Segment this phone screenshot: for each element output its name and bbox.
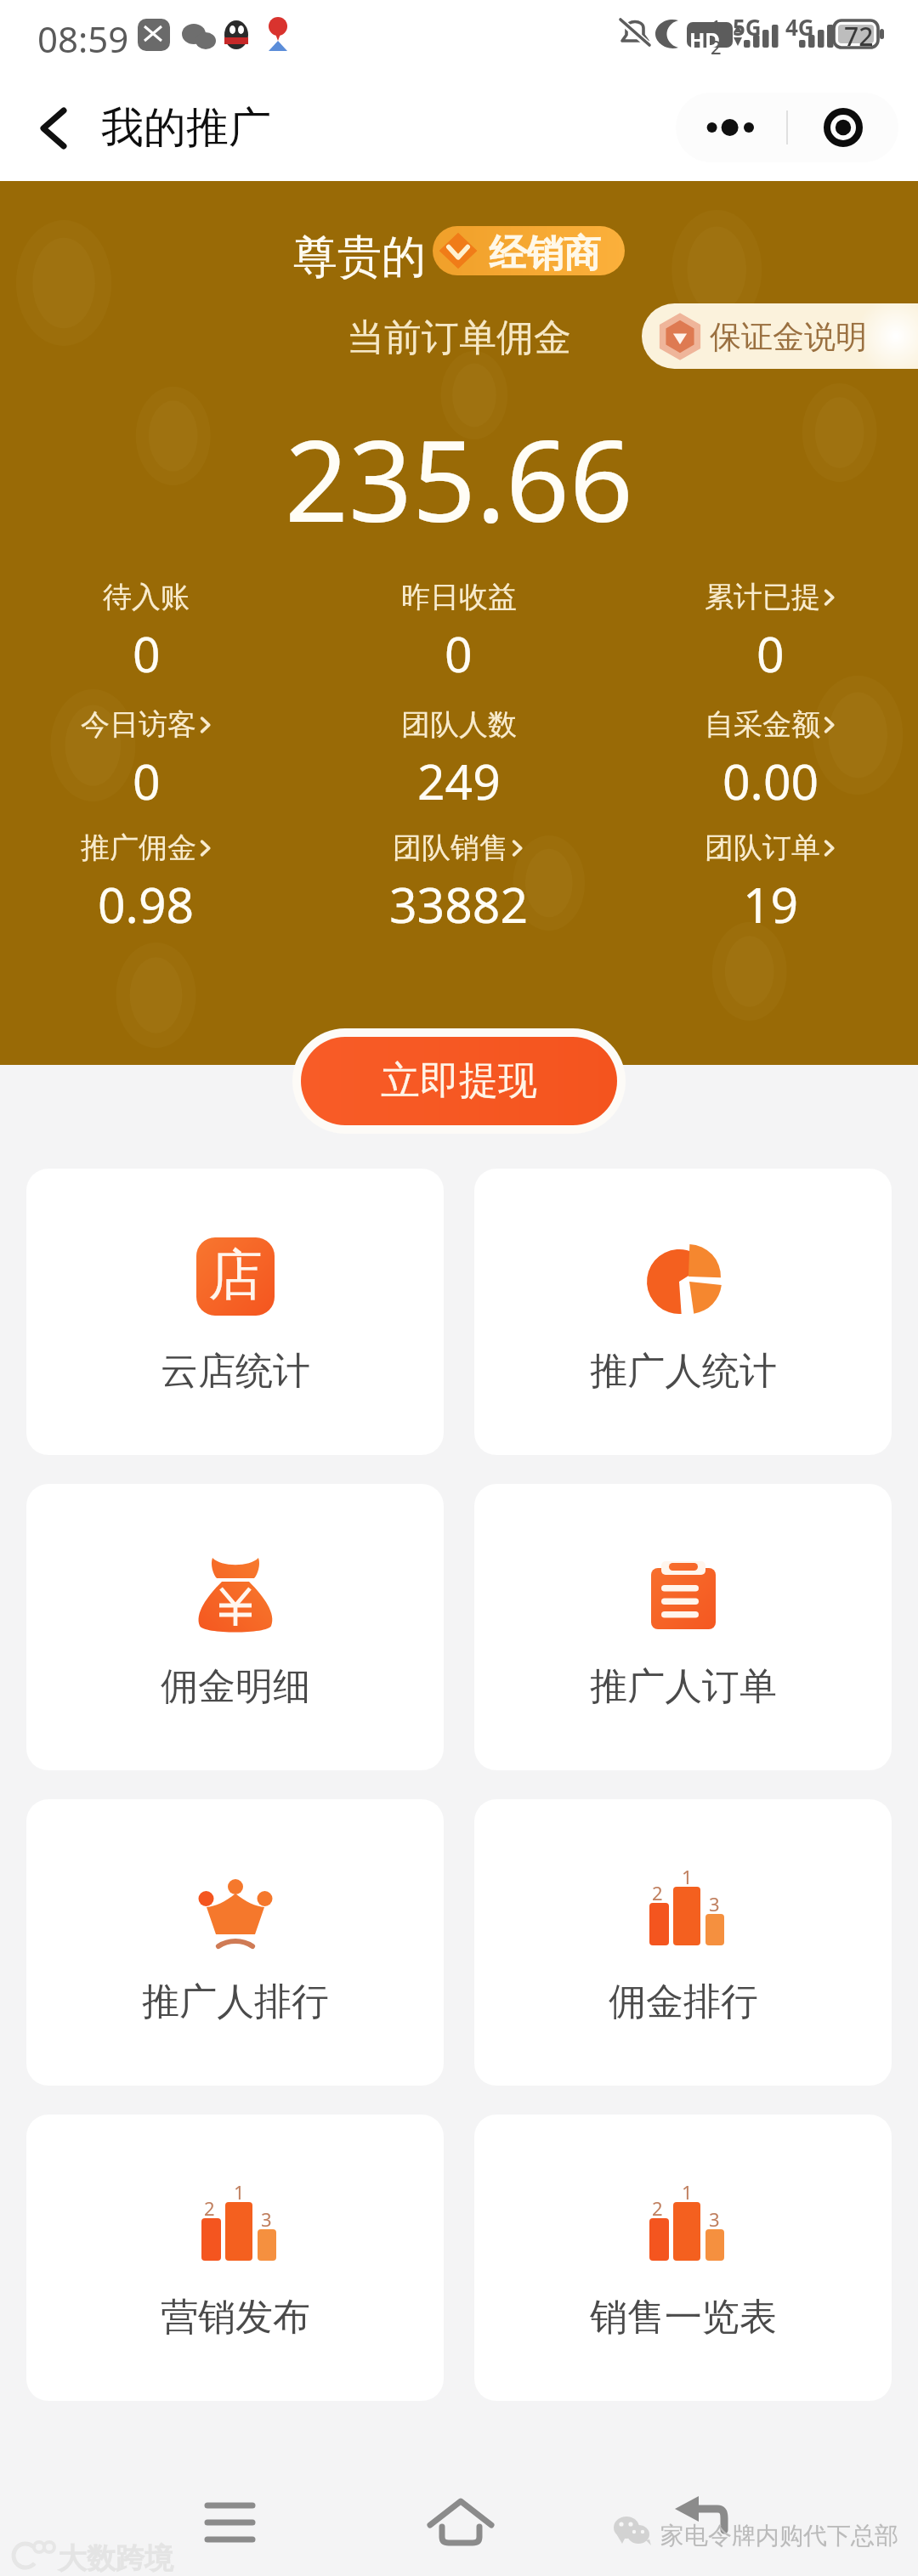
staticText: 销售一览表 <box>590 2294 777 2341</box>
button[interactable]: 推广人排行 <box>26 1799 444 2086</box>
staticText: 72 <box>844 19 874 54</box>
button[interactable]: Recent apps <box>194 2491 265 2562</box>
button[interactable]: 推广佣金 <box>0 829 303 937</box>
staticText: 5G <box>733 12 762 42</box>
button[interactable]: 2 <box>474 1799 892 2086</box>
staticText: 佣金明细 <box>161 1663 310 1710</box>
button[interactable]: Close mini program <box>788 93 898 162</box>
staticText: 0 <box>133 620 161 687</box>
button[interactable]: 2 <box>474 2115 892 2401</box>
staticText: 累计已提 <box>705 579 820 615</box>
staticText: 0 <box>445 620 473 687</box>
staticText: 尊贵的 <box>293 229 426 286</box>
staticText: 2 <box>652 1880 663 1905</box>
staticText: 推广人排行 <box>142 1979 329 2025</box>
staticText: 3 <box>709 1891 720 1916</box>
button[interactable]: 店 <box>26 1169 444 1455</box>
button[interactable]: 保证金说明 <box>642 303 918 369</box>
staticText: 2 <box>711 34 722 59</box>
button[interactable]: 推广人订单 <box>474 1484 892 1770</box>
staticText: 立即提现 <box>381 1056 537 1106</box>
button[interactable]: 团队订单 <box>615 829 918 937</box>
button[interactable]: Back <box>16 91 91 166</box>
button[interactable]: 昨日收益 <box>303 579 615 687</box>
staticText: 4G <box>785 12 814 42</box>
staticText: 0 <box>133 748 161 814</box>
button[interactable]: 推广人统计 <box>474 1169 892 1455</box>
button[interactable]: Home <box>423 2489 498 2564</box>
staticText: 团队人数 <box>401 706 517 743</box>
staticText: 佣金排行 <box>609 1979 758 2025</box>
staticText: 19 <box>743 871 799 937</box>
staticText: 1 <box>711 14 722 39</box>
staticText: HD <box>689 25 720 54</box>
staticText: 大数跨境 <box>58 2540 173 2576</box>
staticText: 推广人统计 <box>590 1348 777 1395</box>
staticText: 2 <box>204 2195 215 2221</box>
staticText: 家电令牌内购代下总部 <box>660 2521 898 2551</box>
staticText: 235.66 <box>0 403 918 554</box>
staticText: 经销商 <box>489 230 601 275</box>
staticText: 保证金说明 <box>710 317 867 357</box>
staticText: 团队销售 <box>393 829 508 866</box>
button[interactable]: 立即提现 <box>301 1037 617 1125</box>
staticText: 249 <box>417 748 501 814</box>
staticText: 云店统计 <box>161 1348 310 1395</box>
button[interactable]: Back <box>668 2493 738 2562</box>
staticText: 店 <box>208 1241 263 1310</box>
button[interactable]: 团队人数 <box>303 706 615 814</box>
staticText: 营销发布 <box>161 2294 310 2341</box>
staticText: 33882 <box>389 871 529 937</box>
staticText: 团队订单 <box>705 829 820 866</box>
staticText: 3 <box>261 2206 272 2232</box>
staticText: 自采金额 <box>705 706 820 743</box>
staticText: 昨日收益 <box>401 579 517 615</box>
button[interactable]: 团队销售 <box>303 829 615 937</box>
button[interactable]: 2 <box>26 2115 444 2401</box>
staticText: 08:59 <box>37 14 129 63</box>
staticText: 2 <box>652 2195 663 2221</box>
staticText: 我的推广 <box>101 101 271 155</box>
staticText: 推广人订单 <box>590 1663 777 1710</box>
staticText: 1 <box>682 2179 693 2205</box>
button[interactable]: 佣金明细 <box>26 1484 444 1770</box>
staticText: 推广佣金 <box>81 829 196 866</box>
staticText: 1 <box>682 1864 693 1889</box>
button[interactable]: 累计已提 <box>615 579 918 687</box>
staticText: 3 <box>709 2206 720 2232</box>
staticText: 0.00 <box>722 748 819 814</box>
staticText: 0 <box>756 620 785 687</box>
staticText: 1 <box>234 2179 245 2205</box>
button[interactable]: 待入账 <box>0 579 303 687</box>
button[interactable]: More options <box>676 93 786 162</box>
staticText: 今日访客 <box>81 706 196 743</box>
staticText: 0.98 <box>98 871 195 937</box>
staticText: 当前订单佣金 <box>0 314 918 361</box>
button[interactable]: 自采金额 <box>615 706 918 814</box>
button[interactable]: 今日访客 <box>0 706 303 814</box>
staticText: 待入账 <box>103 579 190 615</box>
